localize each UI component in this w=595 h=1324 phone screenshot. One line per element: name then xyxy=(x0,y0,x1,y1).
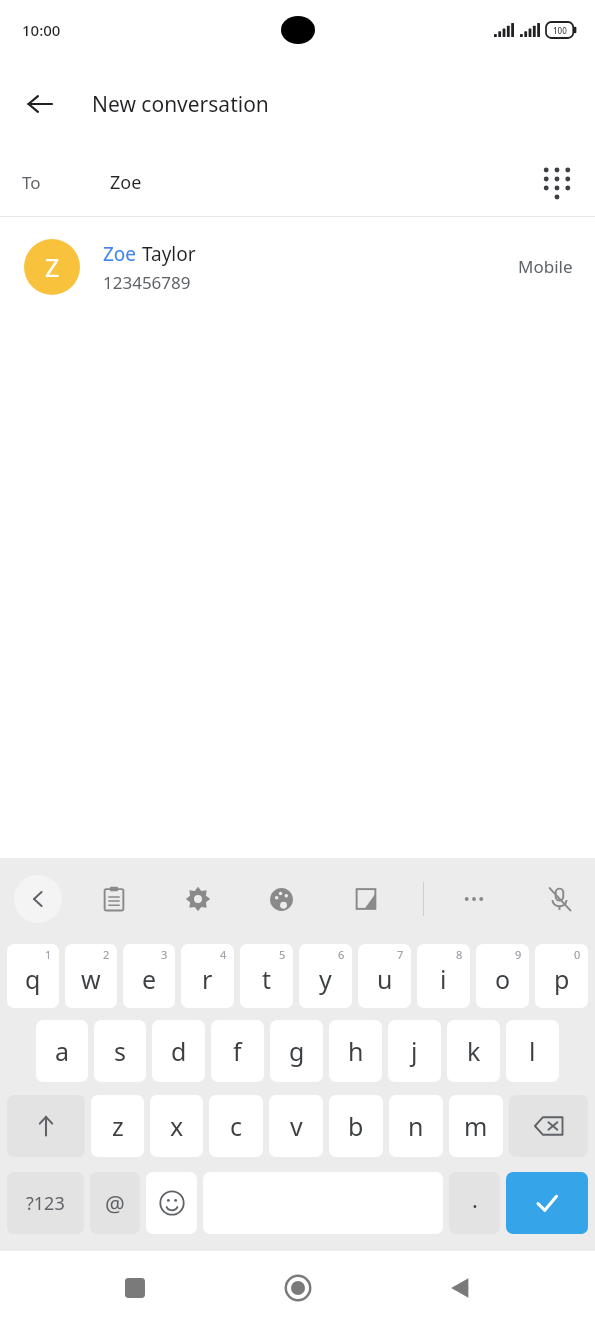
button[interactable]: More options xyxy=(452,877,496,921)
button[interactable]: Back xyxy=(432,1260,488,1316)
button[interactable]: Voice input off xyxy=(538,877,582,921)
button[interactable]: Themes xyxy=(260,877,304,921)
button[interactable]: w xyxy=(65,944,117,1008)
staticText: 6 xyxy=(338,947,345,962)
button[interactable]: Collapse toolbar xyxy=(14,875,62,923)
staticText: @ xyxy=(105,1188,125,1218)
staticText: p xyxy=(554,962,570,996)
staticText: To xyxy=(22,171,41,194)
button[interactable]: v xyxy=(269,1095,323,1157)
button[interactable]: . xyxy=(449,1172,500,1234)
staticText: v xyxy=(290,1109,303,1143)
staticText: n xyxy=(408,1109,424,1143)
staticText: ?123 xyxy=(26,1191,65,1216)
button[interactable]: c xyxy=(209,1095,263,1157)
staticText: 0 xyxy=(574,947,581,962)
staticText: w xyxy=(81,962,101,996)
button[interactable]: f xyxy=(211,1020,264,1082)
button[interactable]: m xyxy=(449,1095,503,1157)
staticText: b xyxy=(348,1109,364,1143)
staticText: o xyxy=(495,962,511,996)
staticText: m xyxy=(464,1109,488,1143)
button[interactable]: Dialpad xyxy=(527,152,587,212)
staticText: 123456789 xyxy=(103,271,191,294)
staticText: i xyxy=(440,962,447,996)
staticText: 9 xyxy=(515,947,522,962)
button[interactable]: j xyxy=(388,1020,441,1082)
button[interactable]: a xyxy=(36,1020,88,1082)
staticText: r xyxy=(202,962,213,996)
staticText: l xyxy=(529,1034,536,1068)
button[interactable]: Recent apps xyxy=(107,1260,163,1316)
button[interactable]: Back xyxy=(8,72,72,136)
button[interactable]: @ xyxy=(90,1172,140,1234)
button[interactable]: ?123 xyxy=(7,1172,84,1234)
staticText: g xyxy=(289,1034,305,1068)
staticText: Z xyxy=(45,250,60,284)
staticText: 3 xyxy=(161,947,168,962)
staticText: d xyxy=(171,1034,187,1068)
staticText: h xyxy=(348,1034,364,1068)
button[interactable]: n xyxy=(389,1095,443,1157)
staticText: 7 xyxy=(397,947,404,962)
staticText: s xyxy=(114,1034,126,1068)
button[interactable]: k xyxy=(447,1020,500,1082)
button[interactable]: Backspace xyxy=(509,1095,588,1157)
staticText: q xyxy=(25,962,41,996)
button[interactable]: i xyxy=(417,944,470,1008)
staticText: z xyxy=(112,1109,124,1143)
button[interactable]: Clipboard xyxy=(92,877,136,921)
button[interactable]: Settings xyxy=(176,877,220,921)
button[interactable]: u xyxy=(358,944,411,1008)
staticText: f xyxy=(233,1034,242,1068)
staticText: Zoe xyxy=(103,241,137,267)
staticText: Taylor xyxy=(137,241,196,267)
staticText: 2 xyxy=(103,947,110,962)
button[interactable]: s xyxy=(94,1020,146,1082)
staticText: 10:00 xyxy=(22,20,61,40)
staticText: 4 xyxy=(220,947,227,962)
staticText: c xyxy=(230,1109,243,1143)
staticText: 1 xyxy=(45,947,52,962)
button[interactable]: q xyxy=(7,944,59,1008)
button[interactable]: Emoji xyxy=(146,1172,197,1234)
button[interactable]: t xyxy=(240,944,293,1008)
button[interactable]: Shift xyxy=(7,1095,85,1157)
button[interactable]: o xyxy=(476,944,529,1008)
staticText: u xyxy=(377,962,393,996)
staticText: e xyxy=(142,962,157,996)
staticText: t xyxy=(262,962,272,996)
staticText: 100 xyxy=(553,25,567,36)
staticText: a xyxy=(55,1034,70,1068)
button[interactable]: b xyxy=(329,1095,383,1157)
button[interactable]: Resize keyboard xyxy=(344,877,388,921)
staticText: j xyxy=(411,1034,418,1068)
button[interactable]: Z xyxy=(0,217,595,317)
button[interactable]: g xyxy=(270,1020,323,1082)
staticText: Mobile xyxy=(518,255,573,278)
staticText: New conversation xyxy=(92,90,269,119)
staticText: x xyxy=(170,1109,184,1143)
button[interactable]: p xyxy=(535,944,588,1008)
staticText: 8 xyxy=(456,947,463,962)
button[interactable]: x xyxy=(150,1095,203,1157)
button[interactable]: r xyxy=(181,944,234,1008)
button[interactable]: Home xyxy=(270,1260,326,1316)
staticText: . xyxy=(472,1184,478,1214)
button[interactable]: l xyxy=(506,1020,559,1082)
staticText: k xyxy=(467,1034,481,1068)
staticText: Zoe xyxy=(110,170,142,195)
button[interactable]: d xyxy=(152,1020,205,1082)
button[interactable]: z xyxy=(91,1095,144,1157)
button[interactable]: h xyxy=(329,1020,382,1082)
button[interactable]: e xyxy=(123,944,175,1008)
staticText: y xyxy=(319,962,332,996)
button[interactable]: Done xyxy=(506,1172,588,1234)
staticText: 5 xyxy=(279,947,286,962)
button[interactable]: y xyxy=(299,944,352,1008)
